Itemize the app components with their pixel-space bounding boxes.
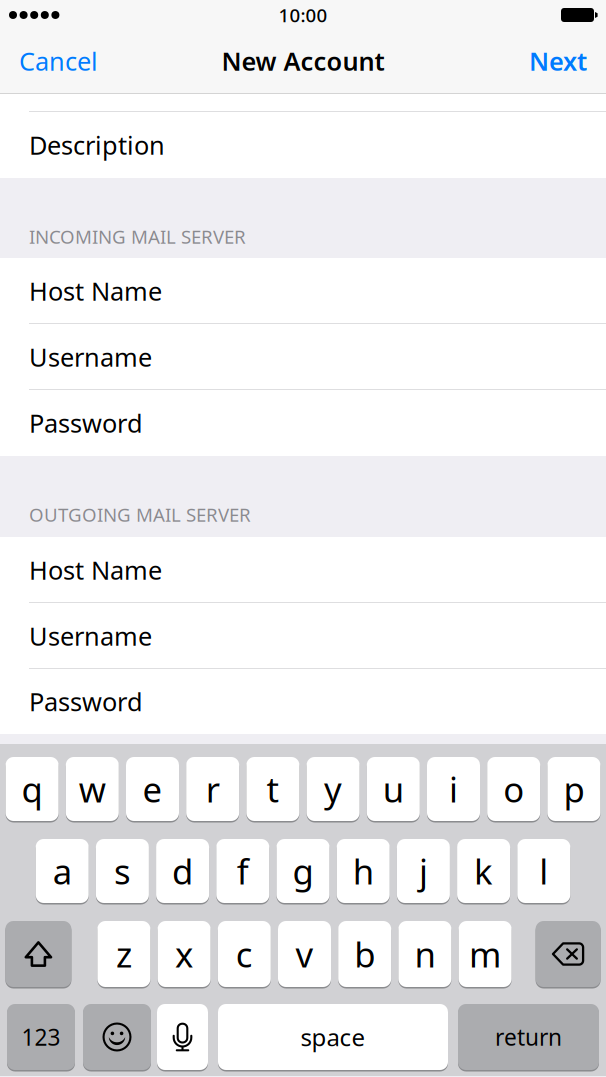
button[interactable]: c [218,921,271,987]
staticText: Username [29,619,152,653]
staticText: Password [29,406,143,440]
button[interactable]: j [397,839,450,903]
button[interactable]: Host Name [0,537,606,603]
button[interactable]: i [427,757,480,821]
button[interactable]: Shift [5,921,71,987]
button[interactable]: g [276,839,329,903]
button[interactable]: k [457,839,510,903]
button[interactable]: t [246,757,299,821]
staticText: j [419,848,428,894]
staticText: s [114,848,131,894]
button[interactable]: v [278,921,331,987]
button[interactable]: e [126,757,179,821]
staticText: d [172,848,193,894]
staticText: a [53,848,72,894]
staticText: x [175,931,193,977]
button[interactable]: x [158,921,211,987]
staticText: g [292,848,313,894]
button[interactable]: s [96,839,149,903]
button[interactable]: z [97,921,150,987]
button[interactable]: r [186,757,239,821]
staticText: z [116,931,132,977]
button[interactable]: u [367,757,420,821]
staticText: t [266,766,279,812]
button[interactable]: Username [0,324,606,390]
button[interactable]: Cancel [0,32,112,94]
button[interactable]: n [398,921,451,987]
staticText: r [206,766,220,812]
button[interactable]: space [218,1004,448,1070]
staticText: l [539,848,548,894]
staticText: Password [29,685,143,718]
button[interactable]: d [156,839,209,903]
button[interactable]: Next [515,32,606,94]
staticText: c [236,931,253,977]
staticText: y [324,766,342,812]
staticText: v [295,931,313,977]
staticText: w [79,766,106,812]
staticText: o [503,766,524,812]
button[interactable]: Emoji [83,1004,151,1070]
button[interactable]: Password [0,669,606,734]
button[interactable]: h [337,839,390,903]
staticText: Host Name [29,274,162,308]
staticText: q [22,766,43,812]
button[interactable]: l [517,839,570,903]
button[interactable]: y [307,757,360,821]
staticText: Next [529,44,587,78]
button[interactable]: 123 [7,1004,75,1070]
staticText: Cancel [19,44,98,78]
staticText: 123 [21,1022,60,1052]
button[interactable]: q [6,757,59,821]
staticText: m [469,931,501,977]
button[interactable]: p [547,757,600,821]
staticText: Host Name [29,553,162,587]
button[interactable]: return [458,1004,599,1070]
button[interactable]: a [36,839,89,903]
button[interactable]: b [338,921,391,987]
button[interactable]: o [487,757,540,821]
staticText: 10:00 [278,3,327,27]
staticText: Description [29,128,165,162]
staticText: u [383,766,404,812]
staticText: OUTGOING MAIL SERVER [29,502,251,527]
staticText: INCOMING MAIL SERVER [29,224,246,249]
staticText: k [474,848,493,894]
staticText: n [414,931,435,977]
staticText: New Account [221,44,384,78]
button[interactable]: w [66,757,119,821]
button[interactable]: Delete [536,921,601,987]
staticText: e [142,766,162,812]
button[interactable]: m [459,921,512,987]
button[interactable]: Host Name [0,258,606,324]
button[interactable]: Dictate [157,1004,208,1070]
button[interactable]: Password [0,390,606,456]
staticText: h [353,848,374,894]
button[interactable]: Description [0,112,606,178]
button[interactable]: f [216,839,269,903]
button[interactable]: Username [0,603,606,669]
staticText: Username [29,340,152,374]
staticText: return [495,1022,562,1052]
staticText: b [354,931,375,977]
staticText: f [237,848,249,894]
staticText: space [300,1021,365,1053]
staticText: i [449,766,458,812]
staticText: p [563,766,584,812]
